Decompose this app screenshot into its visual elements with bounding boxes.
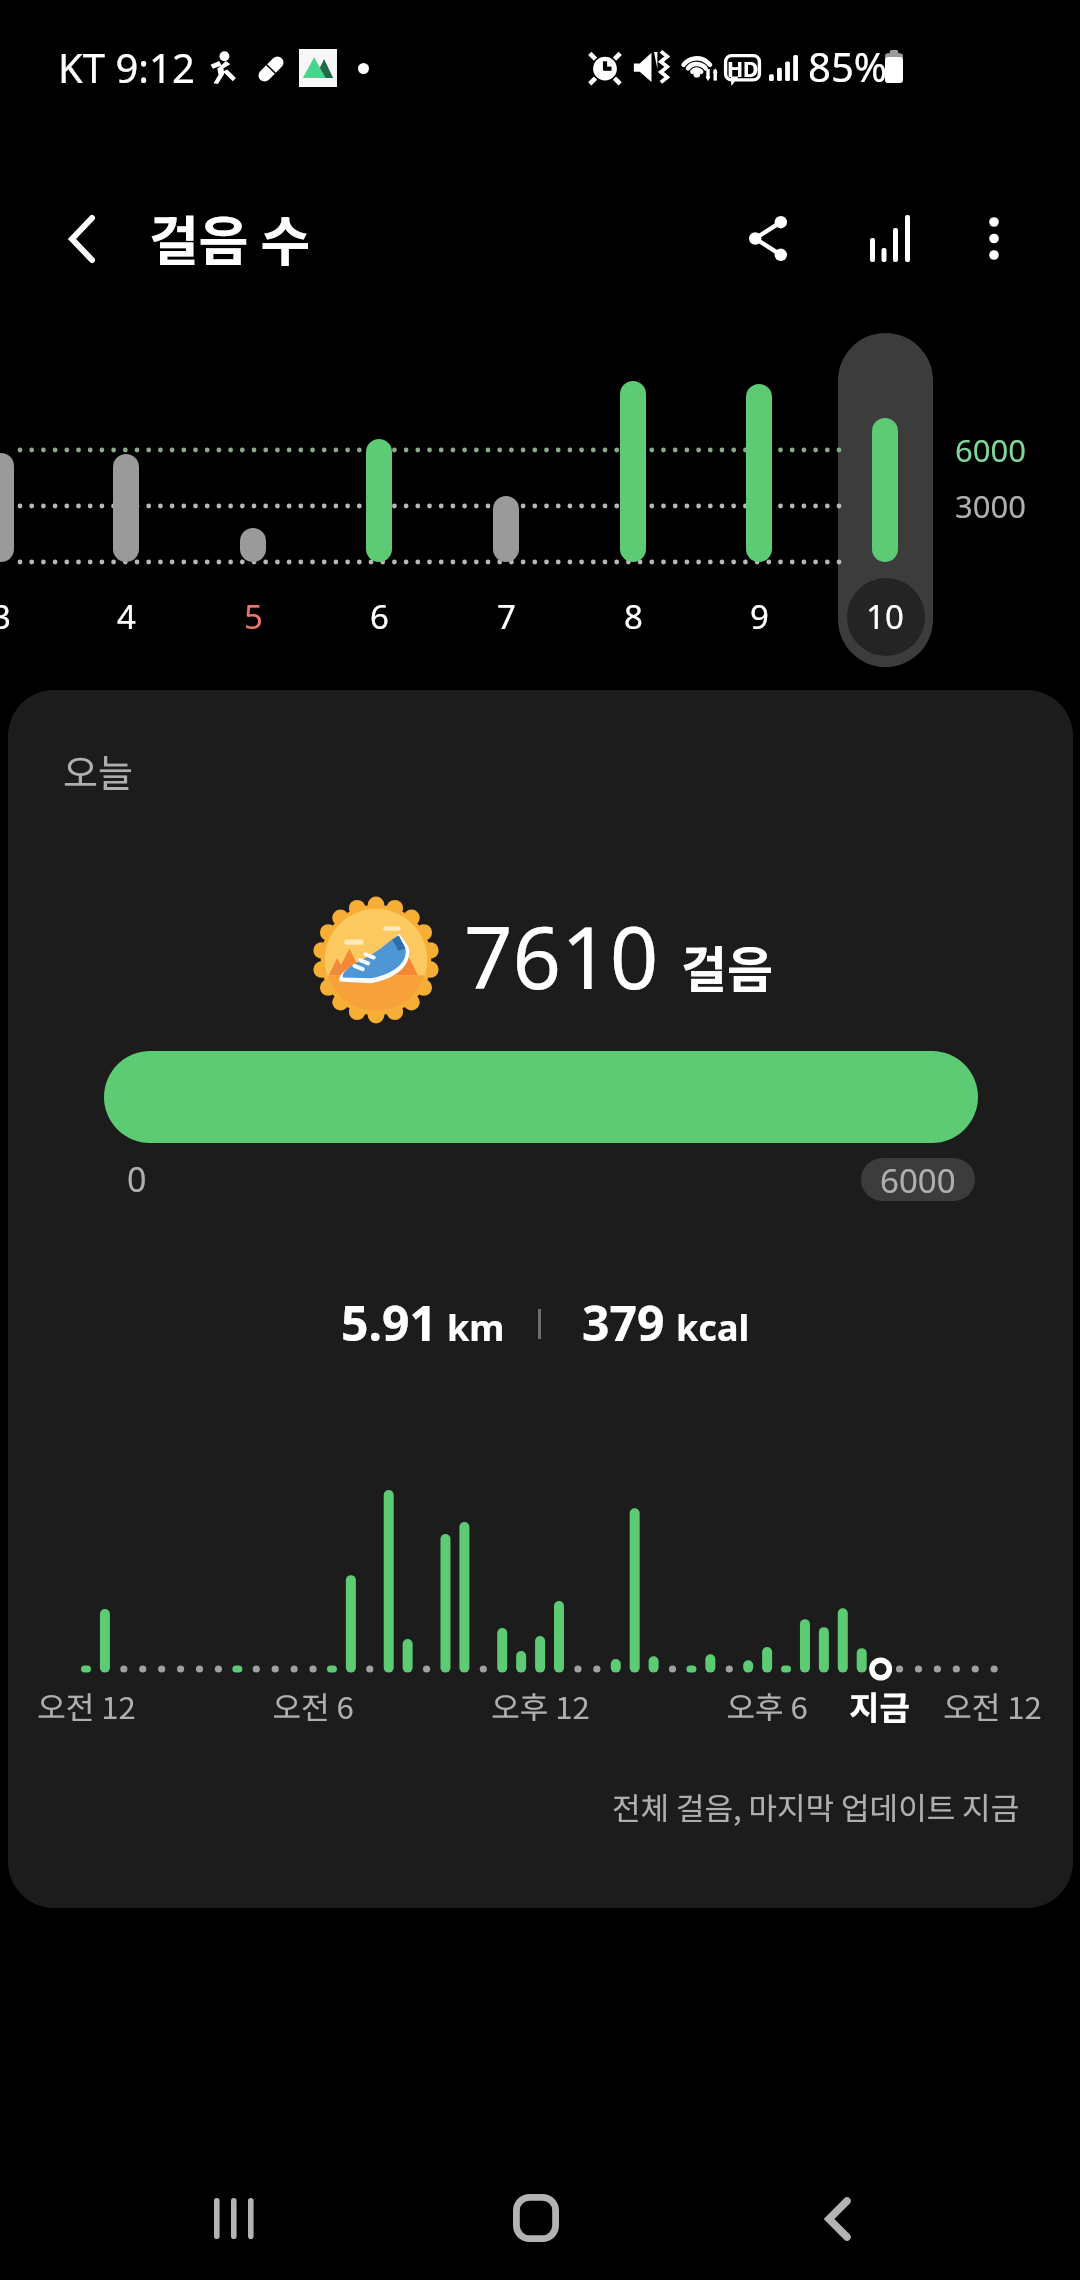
- staticText: 5: [244, 594, 263, 634]
- staticText: 7610: [464, 898, 659, 1014]
- button[interactable]: Statistics: [838, 186, 942, 290]
- button[interactable]: Share: [716, 186, 820, 290]
- staticText: 6000: [880, 1158, 956, 1201]
- staticText: 5.91: [341, 1290, 437, 1355]
- staticText: 지금: [849, 1682, 910, 1730]
- button[interactable]: More options: [942, 186, 1046, 290]
- staticText: 7: [497, 594, 516, 634]
- staticText: 오후 12: [491, 1683, 590, 1728]
- staticText: 오전 12: [37, 1683, 136, 1728]
- staticText: HD: [727, 55, 759, 84]
- staticText: 오전 6: [272, 1683, 354, 1728]
- staticText: 0: [127, 1156, 147, 1202]
- button[interactable]: Back: [30, 187, 134, 291]
- staticText: 4: [117, 594, 136, 634]
- button[interactable]: Back: [765, 2156, 910, 2280]
- staticText: KT 9:12: [58, 40, 195, 94]
- staticText: 3000: [955, 485, 1026, 527]
- staticText: 3: [0, 594, 11, 634]
- staticText: 전체 걸음, 마지막 업데이트 지금: [612, 1784, 1020, 1829]
- button[interactable]: Recent apps: [161, 2157, 306, 2280]
- staticText: 85%: [808, 39, 887, 93]
- staticText: 오전 12: [943, 1683, 1042, 1728]
- staticText: kcal: [676, 1303, 750, 1352]
- staticText: 오후 6: [726, 1683, 808, 1728]
- staticText: 9: [750, 594, 769, 634]
- staticText: 10: [866, 594, 904, 634]
- staticText: 6: [370, 594, 389, 634]
- staticText: 6000: [955, 429, 1026, 471]
- staticText: 8: [624, 594, 643, 634]
- button[interactable]: Home: [463, 2155, 608, 2280]
- staticText: km: [447, 1303, 505, 1352]
- staticText: 오늘: [63, 743, 133, 798]
- staticText: 걸음: [681, 930, 773, 1002]
- staticText: 379: [582, 1290, 665, 1355]
- staticText: 걸음 수: [149, 198, 311, 276]
